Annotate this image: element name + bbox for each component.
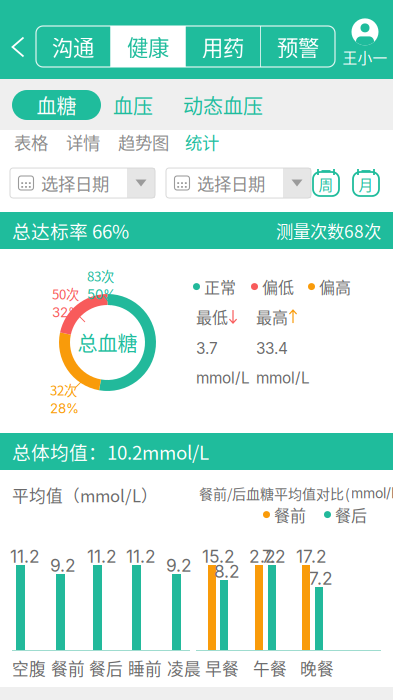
staticText: 2.2 (249, 546, 276, 567)
staticText: 11.2 (10, 546, 40, 567)
button[interactable]: 健康 (111, 26, 185, 67)
staticText: 选择日期 (197, 170, 265, 196)
staticText: 早餐 (205, 656, 239, 680)
staticText: 11.2 (126, 546, 156, 567)
staticText: 33.4 (256, 339, 288, 358)
staticText: 餐前 (274, 503, 306, 526)
staticText: ( (345, 483, 350, 503)
staticText: 月 (358, 173, 373, 195)
staticText: 血糖 (36, 90, 76, 119)
staticText: 沟通 (52, 31, 94, 62)
button[interactable]: 周 (311, 164, 341, 198)
staticText: 偏高 (319, 275, 351, 298)
staticText: 餐前/后血糖平均值对比 (199, 483, 344, 503)
staticText: 9.2 (166, 555, 192, 576)
staticText: 统计 (185, 129, 219, 155)
staticText: 总血糖 (77, 328, 137, 357)
staticText: 9.2 (50, 555, 76, 576)
staticText: 50% (87, 286, 116, 302)
staticText: 11.2 (87, 546, 117, 567)
button[interactable]: 王小一 (339, 20, 391, 66)
staticText: 偏低 (262, 275, 294, 298)
button[interactable]: 用药 (186, 26, 260, 67)
button[interactable]: 月 (351, 164, 381, 198)
staticText: mmol/L (196, 369, 250, 387)
staticText: 17.2 (296, 546, 327, 567)
staticText: 32% (52, 304, 81, 320)
staticText: 预警 (277, 31, 319, 62)
staticText: 王小一 (342, 46, 387, 68)
staticText: mmol/L (256, 369, 310, 387)
staticText: 32次 (50, 380, 77, 399)
staticText: 详情 (66, 129, 100, 155)
staticText: 选择日期 (41, 170, 109, 196)
button[interactable]: 沟通 (36, 26, 110, 67)
staticText: 3.7 (196, 339, 218, 358)
staticText: 餐后 (335, 503, 367, 526)
staticText: 餐前 (51, 656, 85, 680)
staticText: 最高 (256, 305, 288, 328)
staticText: 用药 (202, 31, 244, 62)
button[interactable]: 详情 (64, 130, 102, 154)
staticText: 28% (50, 400, 79, 416)
staticText: mmol/L (351, 485, 393, 502)
staticText: 正常 (204, 275, 236, 298)
staticText: 表格 (14, 129, 48, 155)
button[interactable]: 动态血压 (178, 90, 268, 120)
staticText: 83次 (87, 266, 114, 285)
button[interactable]: 血压 (103, 90, 163, 120)
staticText: 7.2 (262, 546, 286, 567)
staticText: 凌晨 (167, 656, 201, 680)
button[interactable]: 统计 (183, 130, 221, 154)
staticText: 8.2 (214, 561, 240, 582)
staticText: 50次 (52, 284, 79, 303)
staticText: 动态血压 (183, 90, 263, 119)
button[interactable]: 表格 (12, 130, 50, 154)
staticText: 晚餐 (300, 656, 334, 680)
button[interactable]: 选择日期 (10, 168, 155, 198)
staticText: 餐后 (89, 656, 123, 680)
button[interactable]: Back (0, 25, 36, 69)
staticText: 总达标率 66% (12, 217, 129, 244)
button[interactable]: 预警 (261, 26, 335, 67)
staticText: 睡前 (128, 656, 162, 680)
staticText: 血压 (113, 90, 153, 119)
staticText: 周 (318, 173, 333, 195)
staticText: 最低 (196, 305, 228, 328)
staticText: 15.2 (202, 546, 235, 567)
staticText: 空腹 (12, 656, 46, 680)
staticText: 7.2 (309, 568, 333, 589)
button[interactable]: 趋势图 (116, 130, 171, 154)
staticText: 测量次数68次 (276, 218, 381, 243)
staticText: 总体均值：10.2mmol/L (12, 438, 209, 465)
button[interactable]: 血糖 (12, 90, 101, 120)
staticText: 平均值（mmol/L） (12, 483, 158, 507)
staticText: 健康 (127, 31, 169, 62)
staticText: 午餐 (253, 656, 287, 680)
button[interactable]: 选择日期 (166, 168, 311, 198)
staticText: 趋势图 (118, 129, 169, 155)
